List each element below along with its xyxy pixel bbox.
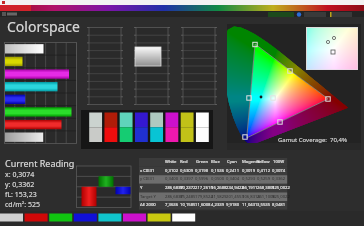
staticText: 0,5293 [242, 176, 256, 182]
staticText: Gamut Coverage: 70,4% [278, 136, 347, 144]
staticText: Y [140, 185, 143, 191]
staticText: 85,2485 [180, 194, 196, 200]
staticText: 3,5535 [257, 202, 271, 208]
staticText: 0,3362 [272, 176, 286, 182]
staticText: 201,4553 [226, 194, 244, 200]
staticText: 7,3636 [165, 202, 179, 208]
staticText: Red [180, 159, 188, 165]
staticText: 66,1911 [242, 185, 258, 191]
staticText: Blue [211, 159, 220, 165]
staticText: 0,6309 [180, 168, 194, 174]
staticText: 10,1585 [180, 202, 196, 208]
staticText: 0,1536 [211, 168, 225, 174]
staticText: 21,5829 [211, 194, 227, 200]
staticText: 261,1008 [257, 194, 275, 200]
staticText: fL: 153,23 [5, 190, 37, 200]
staticText: 0,5259 [257, 176, 271, 182]
staticText: 0,3400 [165, 176, 179, 182]
staticText: 0,3198 [195, 168, 209, 174]
staticText: 16,2688 [211, 185, 227, 191]
staticText: 11,6008 [195, 202, 211, 208]
staticText: 234,9422 [226, 185, 244, 191]
staticText: 50,2372 [180, 185, 196, 191]
staticText: x CIE31 [140, 168, 155, 174]
staticText: 11,0431 [242, 202, 258, 208]
staticText: 0,3102 [165, 168, 179, 174]
staticText: 8,0481 [272, 202, 286, 208]
staticText: 0,2411 [226, 168, 240, 174]
staticText: 0,4112 [257, 168, 271, 174]
staticText: 9,9180 [226, 202, 240, 208]
staticText: x: 0,3074 [5, 170, 35, 180]
staticText: 217,2615 [195, 185, 213, 191]
staticText: 100W [273, 159, 285, 165]
staticText: y: 0,3362 [5, 180, 35, 190]
staticText: 525,0022 [272, 185, 290, 191]
staticText: 0,3397 [180, 176, 194, 182]
staticText: 0,3019 [242, 168, 256, 174]
staticText: y CIE31 [140, 176, 155, 182]
staticText: 0,3074 [272, 168, 286, 174]
staticText: 525,0022 [272, 194, 290, 200]
staticText: Cyan [227, 159, 237, 165]
staticText: 4,2339 [211, 202, 225, 208]
staticText: 0,5996 [195, 176, 209, 182]
staticText: White [165, 159, 177, 165]
staticText: Target Y [140, 194, 156, 200]
staticText: 286,6837 [165, 194, 183, 200]
staticText: 286,6837 [165, 185, 183, 191]
staticText: 106,8314 [242, 194, 260, 200]
staticText: Current Reading [5, 157, 75, 169]
staticText: cd/m²: 525 [5, 200, 40, 210]
staticText: ΔE 2000 [140, 202, 156, 208]
staticText: 268,3801 [257, 185, 275, 191]
staticText: Colorspace [7, 17, 80, 36]
staticText: 0,3404 [226, 176, 240, 182]
staticText: Green [196, 159, 209, 165]
staticText: Magenta [242, 159, 260, 165]
staticText: Yellow [257, 159, 270, 165]
staticText: 179,8524 [195, 194, 213, 200]
staticText: 0,0500 [211, 176, 225, 182]
